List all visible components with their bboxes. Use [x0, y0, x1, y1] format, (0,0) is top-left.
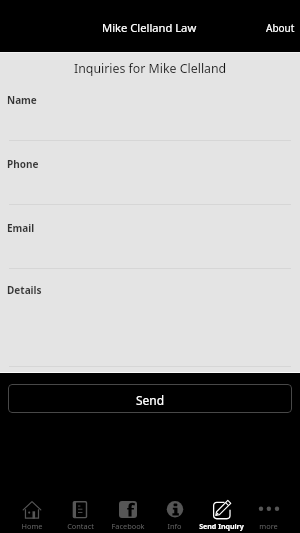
button[interactable]: About	[256, 13, 300, 43]
staticText: Name	[7, 93, 37, 107]
staticText: About	[266, 21, 295, 35]
staticText: Facebook	[111, 521, 145, 531]
staticText: Send	[136, 392, 165, 408]
button[interactable]: Facebook	[104, 480, 151, 533]
button[interactable]: Send Inquiry	[198, 480, 245, 533]
button[interactable]: Home	[8, 480, 56, 533]
staticText: Phone	[7, 157, 39, 171]
button[interactable]: more	[245, 480, 292, 533]
staticText: Inquiries for Mike Clelland	[74, 60, 227, 77]
staticText: Home	[21, 521, 43, 531]
staticText: Send Inquiry	[199, 521, 244, 531]
staticText: more	[259, 521, 278, 531]
button[interactable]: Info	[151, 480, 198, 533]
staticText: Info	[167, 521, 182, 531]
button[interactable]: Send	[8, 384, 292, 413]
button[interactable]: Contact	[56, 480, 104, 533]
staticText: Contact	[67, 521, 94, 531]
staticText: Mike Clelland Law	[102, 20, 197, 35]
staticText: Details	[7, 283, 42, 297]
staticText: Email	[7, 221, 35, 235]
